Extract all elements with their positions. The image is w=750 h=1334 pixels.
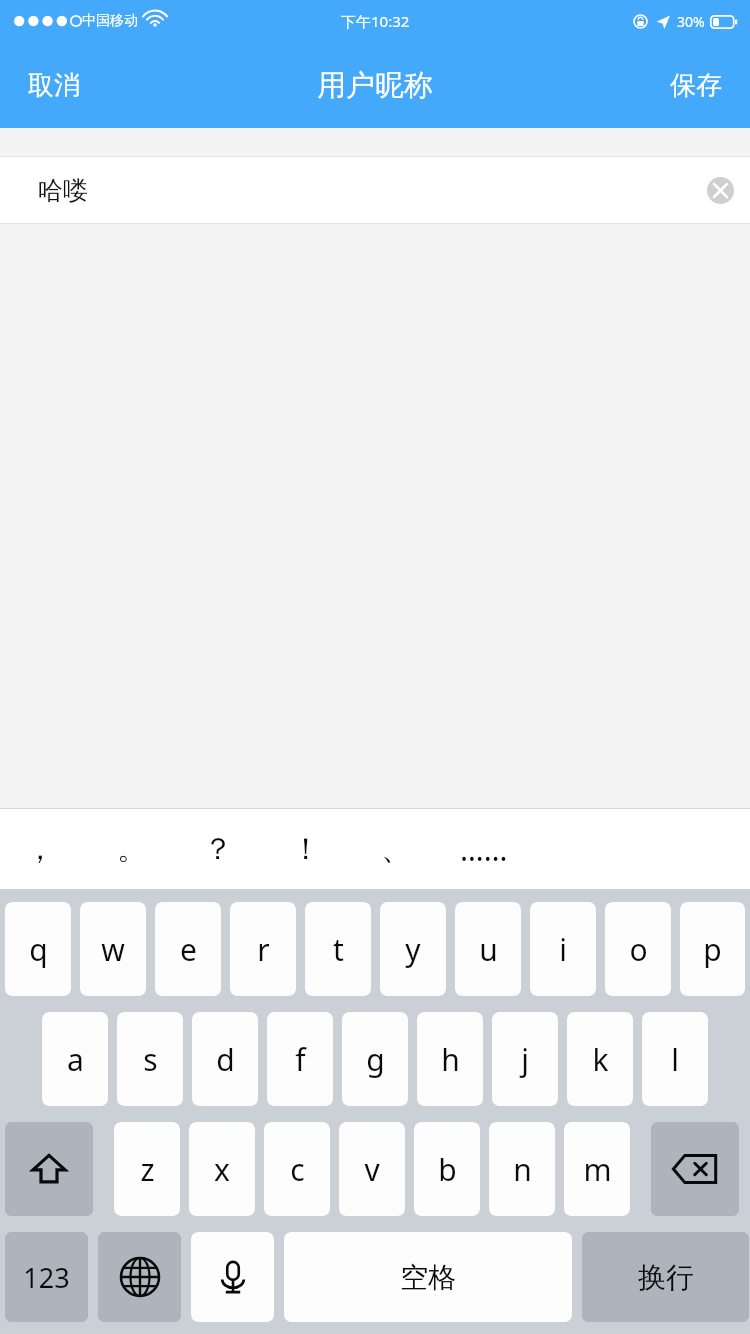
staticText: 。	[117, 830, 147, 868]
button[interactable]: w	[80, 902, 146, 996]
button[interactable]: j	[492, 1012, 558, 1106]
staticText: q	[29, 929, 48, 970]
staticText: x	[214, 1149, 230, 1190]
staticText: e	[180, 929, 197, 970]
staticText: p	[703, 929, 722, 970]
button[interactable]: a	[42, 1012, 108, 1106]
button[interactable]: Switch keyboard	[98, 1232, 181, 1322]
button[interactable]: i	[530, 902, 596, 996]
button[interactable]: 换行	[582, 1232, 749, 1322]
button[interactable]: t	[305, 902, 371, 996]
staticText: j	[521, 1039, 529, 1080]
button[interactable]: f	[267, 1012, 333, 1106]
staticText: 取消	[28, 69, 80, 102]
staticText: h	[441, 1039, 460, 1080]
button[interactable]: h	[417, 1012, 483, 1106]
staticText: ，	[25, 830, 55, 868]
staticText: y	[405, 929, 421, 970]
staticText: 保存	[670, 69, 722, 102]
staticText: z	[140, 1149, 155, 1190]
staticText: 下午10:32	[341, 11, 410, 31]
staticText: ？	[203, 830, 233, 868]
button[interactable]: d	[192, 1012, 258, 1106]
button[interactable]: 空格	[284, 1232, 572, 1322]
button[interactable]: 哈喽	[0, 157, 750, 223]
staticText: l	[671, 1039, 679, 1080]
button[interactable]: u	[455, 902, 521, 996]
staticText: g	[366, 1039, 385, 1080]
button[interactable]: q	[5, 902, 71, 996]
staticText: o	[629, 929, 648, 970]
button[interactable]: ！	[278, 809, 334, 889]
staticText: 用户昵称	[317, 67, 433, 104]
button[interactable]: 保存	[642, 53, 750, 118]
staticText: ！	[291, 830, 321, 868]
staticText: n	[513, 1149, 532, 1190]
staticText: 、	[381, 830, 411, 868]
button[interactable]: g	[342, 1012, 408, 1106]
staticText: k	[592, 1039, 609, 1080]
button[interactable]: ，	[12, 809, 68, 889]
staticText: v	[364, 1149, 380, 1190]
button[interactable]: x	[189, 1122, 255, 1216]
staticText: w	[101, 929, 125, 970]
button[interactable]: v	[339, 1122, 405, 1216]
button[interactable]: y	[380, 902, 446, 996]
button[interactable]: n	[489, 1122, 555, 1216]
staticText: 换行	[638, 1260, 694, 1295]
staticText: a	[67, 1039, 84, 1080]
button[interactable]: 取消	[0, 53, 108, 118]
button[interactable]: Shift	[5, 1122, 93, 1216]
staticText: 30%	[677, 12, 705, 31]
staticText: c	[290, 1149, 305, 1190]
button[interactable]: l	[642, 1012, 708, 1106]
button[interactable]: ？	[190, 809, 246, 889]
button[interactable]: b	[414, 1122, 480, 1216]
button[interactable]: 123	[5, 1232, 88, 1322]
staticText: d	[216, 1039, 235, 1080]
button[interactable]: e	[155, 902, 221, 996]
button[interactable]: 。	[104, 809, 160, 889]
staticText: b	[438, 1149, 457, 1190]
staticText: 哈喽	[38, 175, 88, 206]
staticText: u	[479, 929, 498, 970]
button[interactable]: o	[605, 902, 671, 996]
button[interactable]: 、	[368, 809, 424, 889]
button[interactable]: s	[117, 1012, 183, 1106]
staticText: i	[559, 929, 567, 970]
staticText: 123	[23, 1259, 70, 1296]
button[interactable]: k	[567, 1012, 633, 1106]
button[interactable]: Backspace	[651, 1122, 739, 1216]
button[interactable]: Voice input	[191, 1232, 274, 1322]
button[interactable]: Clear text	[704, 174, 736, 206]
staticText: t	[333, 929, 344, 970]
button[interactable]: ……	[456, 809, 512, 889]
staticText: 空格	[400, 1260, 456, 1295]
staticText: ……	[460, 829, 508, 870]
staticText: m	[583, 1149, 612, 1190]
button[interactable]: z	[114, 1122, 180, 1216]
button[interactable]: r	[230, 902, 296, 996]
button[interactable]: p	[680, 902, 745, 996]
staticText: f	[295, 1039, 306, 1080]
button[interactable]: c	[264, 1122, 330, 1216]
button[interactable]: m	[564, 1122, 630, 1216]
staticText: s	[143, 1039, 158, 1080]
staticText: 中国移动	[82, 12, 138, 30]
staticText: r	[257, 929, 270, 970]
